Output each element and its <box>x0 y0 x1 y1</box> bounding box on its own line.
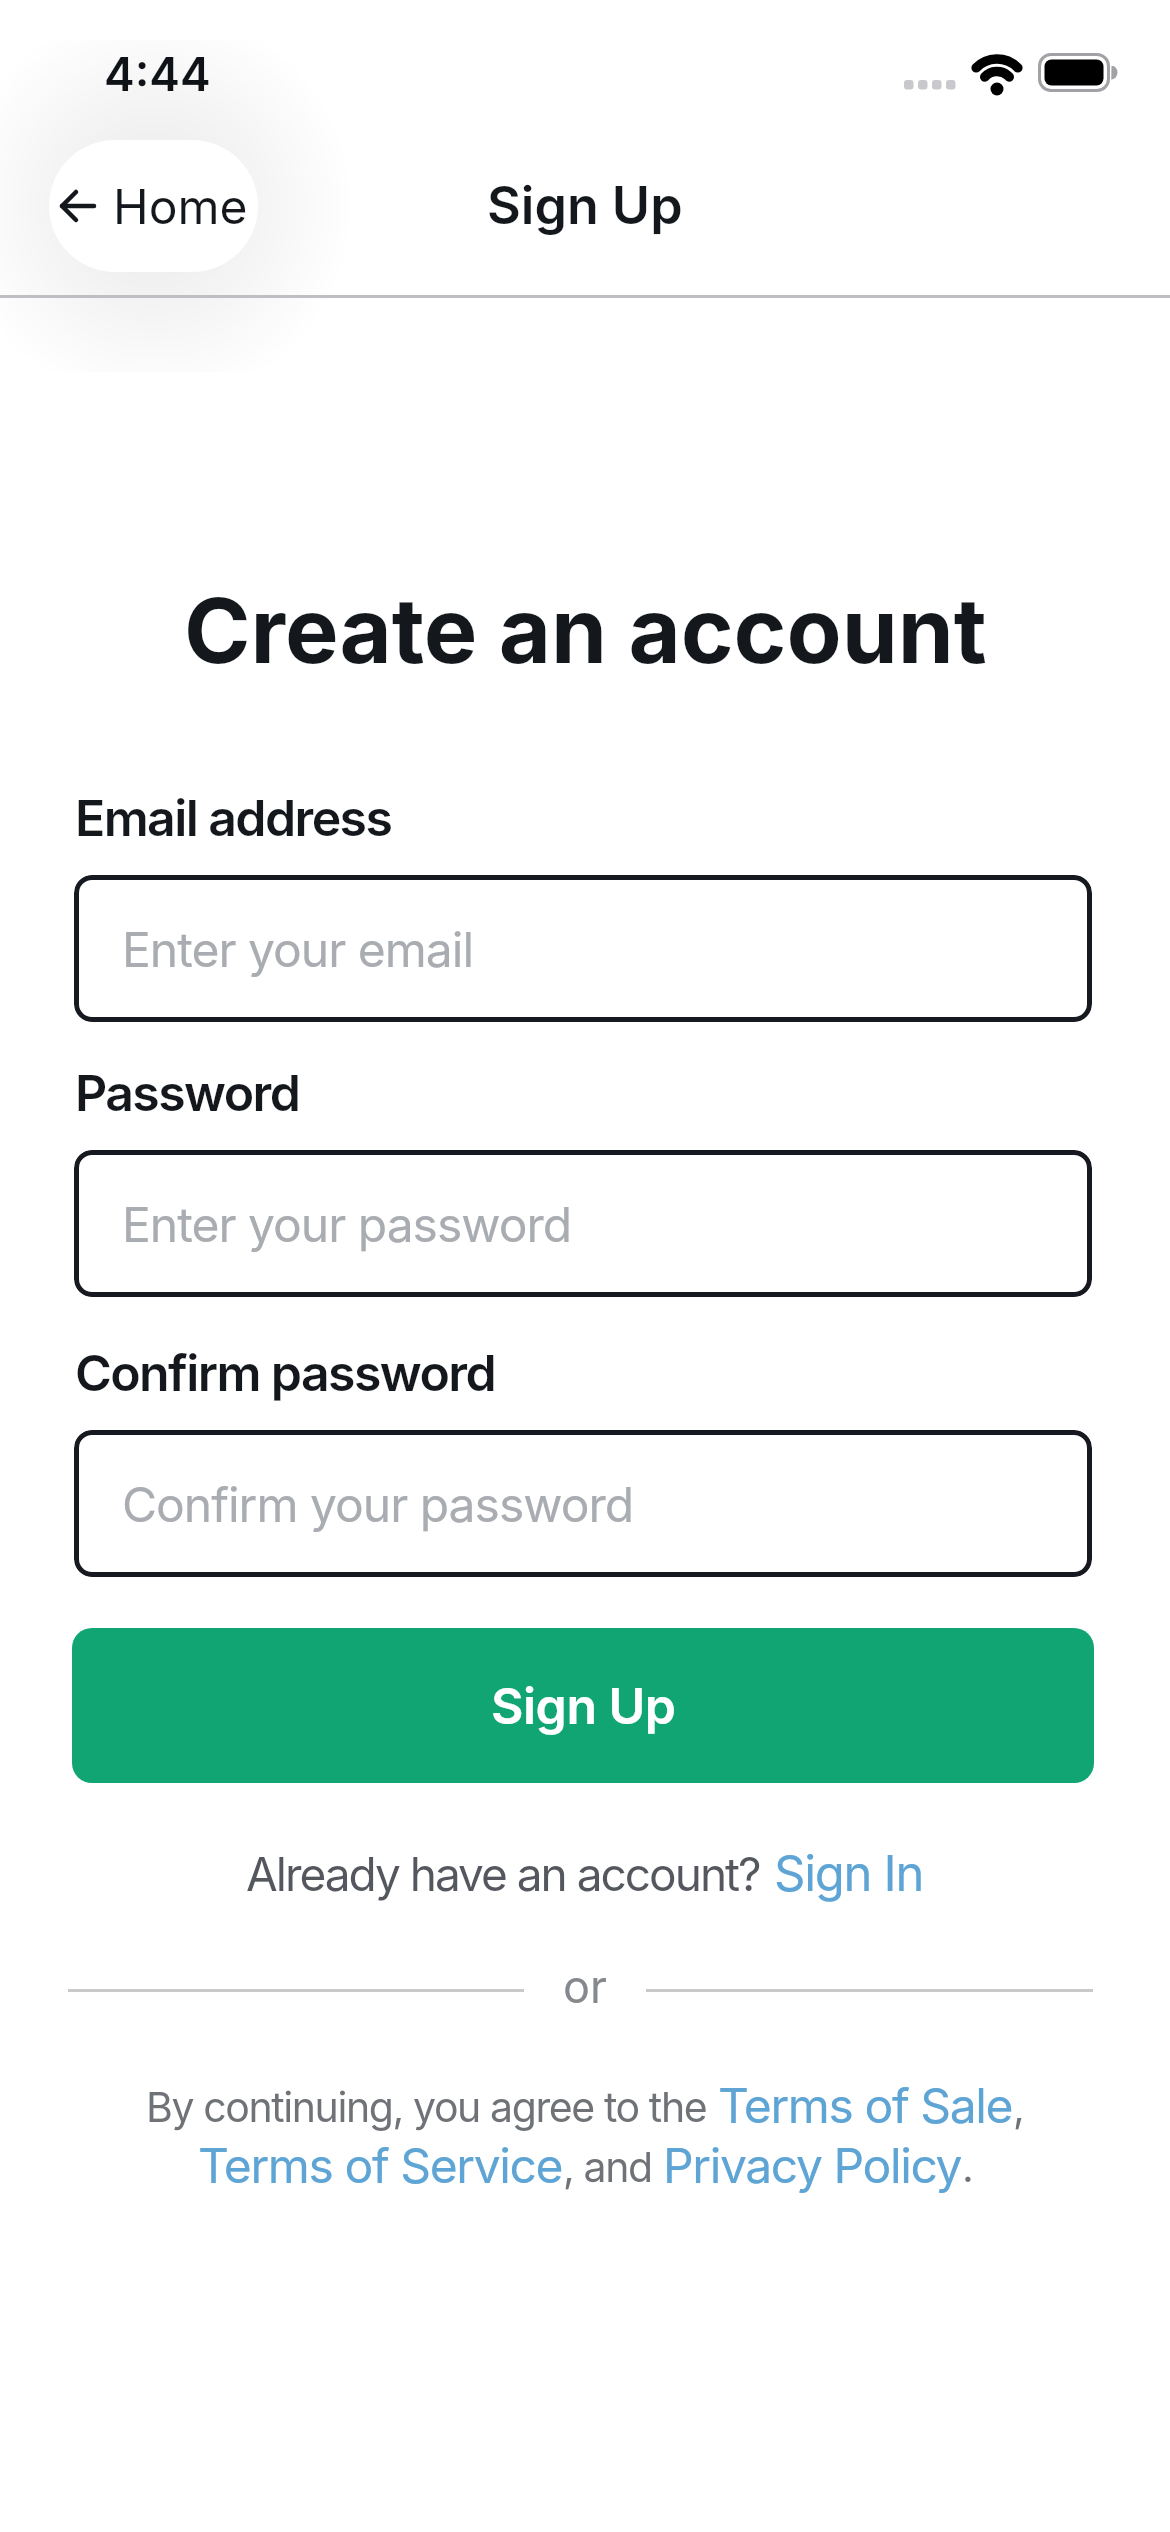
staticText: , <box>1013 2082 1024 2132</box>
button[interactable]: Sign Up <box>72 1628 1094 1783</box>
staticText: Already have an account? <box>246 1846 760 1902</box>
staticText: Enter your password <box>122 1195 572 1253</box>
button[interactable]: Enter your email <box>74 875 1092 1022</box>
button[interactable]: Confirm your password <box>74 1430 1092 1577</box>
button[interactable]: Sign In <box>774 1844 924 1903</box>
staticText: Confirm your password <box>122 1475 634 1533</box>
staticText: , and <box>563 2142 652 2192</box>
staticText: Email address <box>75 788 392 848</box>
button[interactable]: Enter your password <box>74 1150 1092 1297</box>
staticText: Password <box>75 1063 300 1123</box>
staticText: Sign Up <box>487 174 683 237</box>
staticText: 4:44 <box>104 46 211 102</box>
button[interactable]: Home <box>49 140 258 272</box>
staticText: Sign Up <box>491 1676 676 1736</box>
button[interactable]: Terms of Sale <box>718 2076 1013 2134</box>
button[interactable]: Privacy Policy <box>663 2136 962 2194</box>
staticText: Create an account <box>184 576 987 685</box>
button[interactable]: Terms of Service <box>198 2136 563 2194</box>
staticText: By continuing, you agree to the <box>146 2082 707 2132</box>
staticText: or <box>563 1959 607 2013</box>
staticText: Home <box>113 177 248 235</box>
staticText: . <box>962 2142 973 2192</box>
staticText: Enter your email <box>122 920 474 978</box>
staticText: Confirm password <box>75 1343 495 1403</box>
